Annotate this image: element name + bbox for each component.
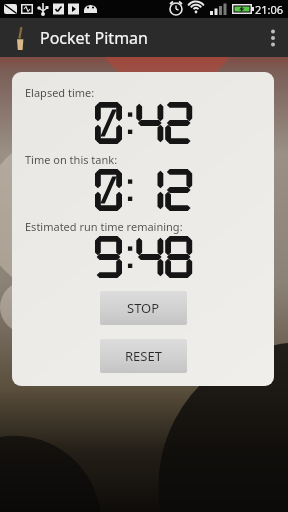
- staticText: Time on this tank:: [25, 152, 118, 167]
- staticText: STOP: [127, 299, 160, 317]
- button[interactable]: STOP: [100, 291, 187, 325]
- staticText: Pocket Pitman: [40, 27, 148, 49]
- button[interactable]: RESET: [100, 339, 187, 373]
- button[interactable]: More options: [258, 18, 288, 57]
- staticText: RESET: [125, 347, 162, 365]
- staticText: 21:06: [255, 2, 284, 17]
- staticText: Estimated run time remaining:: [25, 219, 183, 234]
- staticText: Elapsed time:: [25, 85, 95, 100]
